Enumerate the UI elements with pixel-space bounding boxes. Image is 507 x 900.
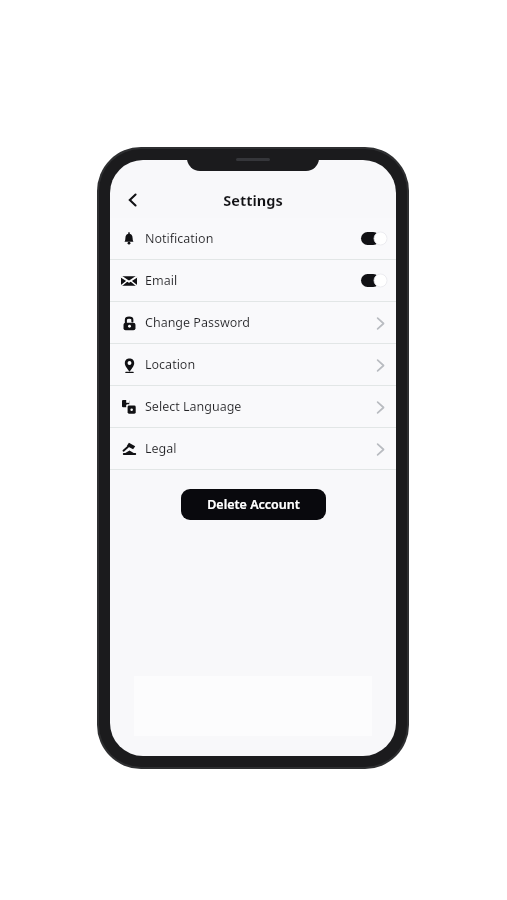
button[interactable]: Location [110, 344, 396, 385]
button[interactable]: Toggle [361, 274, 387, 287]
staticText: Delete Account [207, 496, 300, 513]
button[interactable]: Legal [110, 428, 396, 469]
staticText: Location [145, 356, 196, 373]
button[interactable]: Notification [110, 218, 396, 259]
staticText: Change Password [145, 314, 250, 331]
staticText: Legal [145, 440, 177, 457]
button[interactable]: Toggle [361, 232, 387, 245]
staticText: Notification [145, 230, 214, 247]
button[interactable]: Delete Account [181, 489, 326, 520]
button[interactable]: Email [110, 260, 396, 301]
button[interactable]: Select Language [110, 386, 396, 427]
button[interactable]: Change Password [110, 302, 396, 343]
staticText: Settings [223, 190, 283, 210]
button[interactable]: Back [116, 183, 150, 217]
staticText: Select Language [145, 398, 242, 415]
staticText: Email [145, 272, 178, 289]
